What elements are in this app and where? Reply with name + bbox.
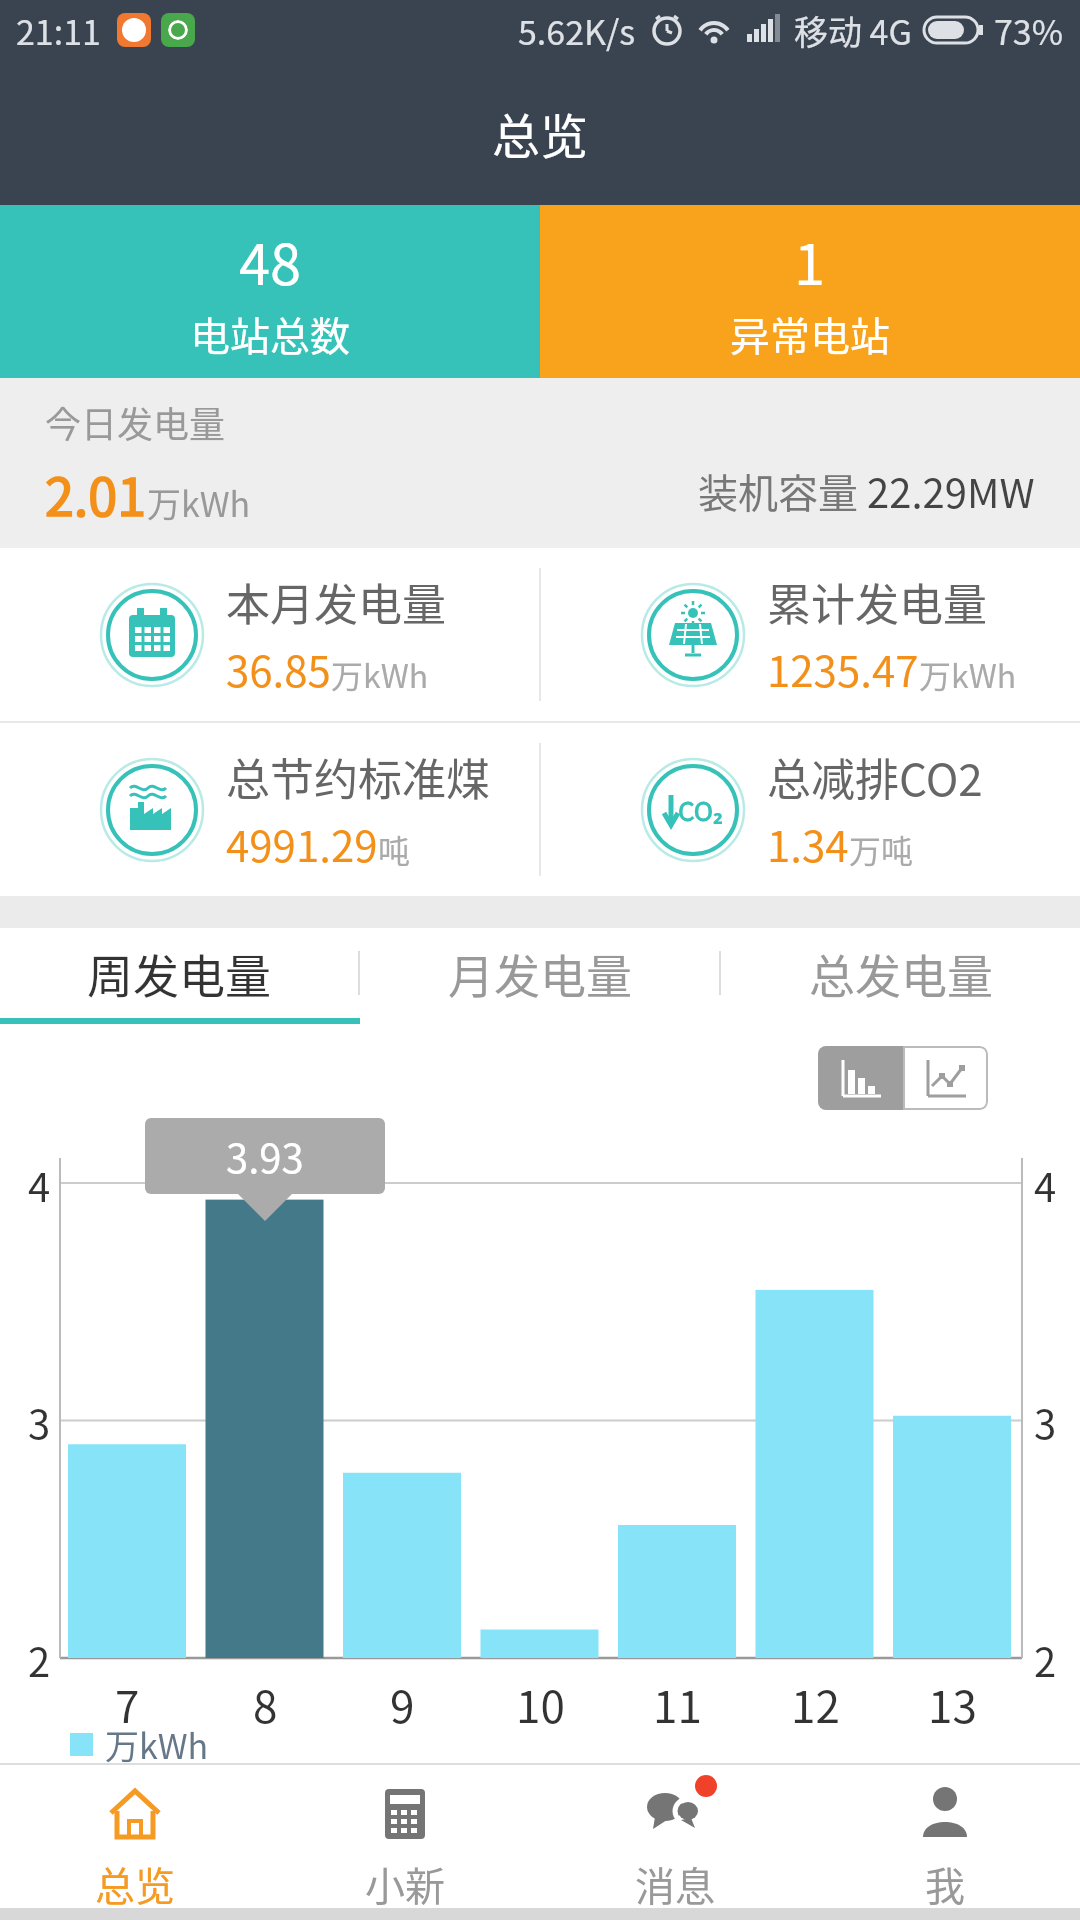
staticText: 异常电站 <box>730 305 890 363</box>
button[interactable]: 我 <box>810 1765 1080 1908</box>
staticText: 5.62K/s <box>518 6 636 55</box>
staticText: 移动 4G <box>794 6 912 55</box>
staticText: 电站总数 <box>190 305 350 363</box>
staticText: 1235.47 <box>767 638 919 699</box>
staticText: 2.01 <box>45 456 147 531</box>
staticText: 我 <box>925 1855 965 1908</box>
staticText: 吨 <box>378 826 411 872</box>
staticText: 4991.29 <box>226 813 378 874</box>
staticText: 10 <box>516 1672 565 1736</box>
button[interactable] <box>903 1046 988 1110</box>
staticText: 消息 <box>635 1855 715 1908</box>
staticText: 12 <box>791 1672 840 1736</box>
staticText: 总节约标准煤 <box>226 745 490 809</box>
staticText: 13 <box>928 1672 977 1736</box>
staticText: 累计发电量 <box>767 570 987 634</box>
staticText: 总减排CO2 <box>767 745 983 809</box>
staticText: 36.85 <box>226 638 331 699</box>
staticText: 22.29MW <box>867 462 1035 520</box>
button[interactable]: 本月发电量 <box>0 548 539 721</box>
staticText: 21:11 <box>16 6 101 55</box>
staticText: 今日发电量 <box>45 396 226 448</box>
staticText: 本月发电量 <box>226 570 446 634</box>
staticText: CO₂ <box>678 791 723 829</box>
button[interactable]: CO₂ <box>541 723 1080 896</box>
staticText: 2 <box>1034 1631 1057 1689</box>
button[interactable]: 总发电量 <box>721 928 1080 1018</box>
staticText: 1 <box>794 220 826 301</box>
button[interactable]: 周发电量 <box>0 928 358 1018</box>
staticText: 装机容量 <box>698 462 867 520</box>
staticText: 总发电量 <box>809 940 993 1007</box>
button[interactable]: 月发电量 <box>360 928 719 1018</box>
button[interactable]: 总节约标准煤 <box>0 723 539 896</box>
staticText: 7 <box>115 1672 140 1736</box>
staticText: 周发电量 <box>87 940 271 1007</box>
staticText: 1.34 <box>767 813 849 874</box>
staticText: 万kWh <box>919 651 1017 697</box>
staticText: 万kWh <box>105 1720 209 1769</box>
staticText: 4 <box>1034 1156 1057 1214</box>
staticText: 月发电量 <box>448 940 632 1007</box>
staticText: 4 <box>28 1156 51 1214</box>
staticText: 3 <box>28 1393 51 1451</box>
staticText: 3.93 <box>226 1127 304 1185</box>
staticText: 3 <box>1034 1393 1057 1451</box>
button[interactable] <box>818 1046 903 1110</box>
staticText: 小新 <box>365 1855 445 1908</box>
button[interactable]: 1 <box>540 205 1080 378</box>
button[interactable]: 累计发电量 <box>541 548 1080 721</box>
button[interactable]: 消息 <box>540 1765 810 1908</box>
staticText: 总览 <box>95 1855 175 1908</box>
staticText: 73% <box>994 6 1064 55</box>
staticText: 8 <box>253 1672 278 1736</box>
button[interactable]: 小新 <box>270 1765 540 1908</box>
staticText: 48 <box>239 220 302 301</box>
button[interactable]: 48 <box>0 205 540 378</box>
staticText: 万kWh <box>331 651 429 697</box>
staticText: 11 <box>653 1672 702 1736</box>
staticText: 2 <box>28 1631 51 1689</box>
staticText: 9 <box>390 1672 415 1736</box>
button[interactable]: 总览 <box>0 1765 270 1908</box>
staticText: 总览 <box>492 98 589 168</box>
staticText: 万吨 <box>849 826 914 872</box>
staticText: 万kWh <box>147 478 251 527</box>
